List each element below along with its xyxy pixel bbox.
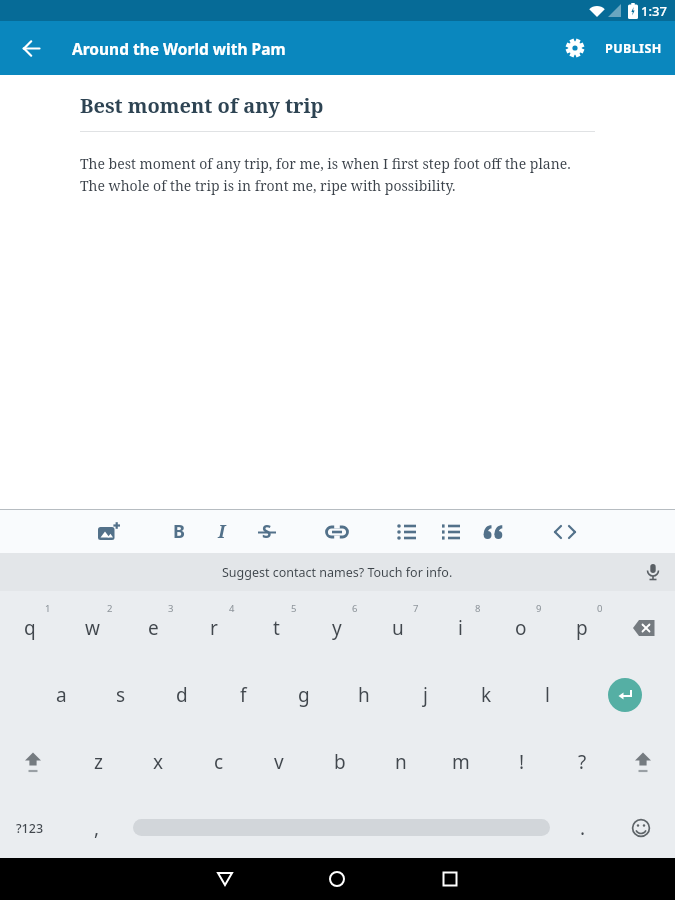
button[interactable]: i xyxy=(432,598,488,658)
button[interactable] xyxy=(88,510,128,553)
button[interactable]: b xyxy=(312,732,368,792)
staticText: ? xyxy=(578,749,587,775)
staticText: n xyxy=(395,749,407,775)
staticText: B xyxy=(173,519,185,544)
button[interactable] xyxy=(615,732,671,792)
button[interactable] xyxy=(613,798,669,858)
staticText: t xyxy=(273,615,280,641)
button[interactable]: e xyxy=(125,598,181,658)
button[interactable]: PUBLISH xyxy=(597,21,675,75)
button[interactable]: p xyxy=(554,598,610,658)
button[interactable]: ?123 xyxy=(0,798,60,858)
staticText: s xyxy=(116,682,126,708)
staticText: 7 xyxy=(413,602,419,615)
staticText: Around the World with Pam xyxy=(72,38,286,59)
button[interactable]: y xyxy=(309,598,365,658)
staticText: i xyxy=(458,615,463,641)
button[interactable] xyxy=(599,665,651,725)
staticText: 8 xyxy=(475,602,481,615)
staticText: . xyxy=(580,815,586,841)
button[interactable]: f xyxy=(215,665,271,725)
staticText: h xyxy=(358,682,370,708)
staticText: 3 xyxy=(168,602,174,615)
staticText: j xyxy=(423,682,428,708)
staticText: g xyxy=(298,682,310,708)
staticText: 4 xyxy=(229,602,235,615)
staticText: y xyxy=(332,615,342,641)
button[interactable]: t xyxy=(248,598,304,658)
button[interactable]: n xyxy=(373,732,429,792)
staticText: w xyxy=(85,615,100,641)
staticText: 2 xyxy=(107,602,113,615)
button[interactable]: d xyxy=(154,665,210,725)
button[interactable] xyxy=(553,21,597,75)
staticText: v xyxy=(274,749,284,775)
button[interactable]: ? xyxy=(554,732,610,792)
staticText: I xyxy=(218,519,226,544)
button[interactable]: q xyxy=(2,598,58,658)
staticText: a xyxy=(56,682,67,708)
button[interactable] xyxy=(313,858,361,900)
staticText: q xyxy=(24,615,36,641)
staticText: b xyxy=(334,749,346,775)
staticText: x xyxy=(153,749,164,775)
staticText: c xyxy=(214,749,224,775)
button[interactable] xyxy=(5,732,61,792)
button[interactable]: k xyxy=(458,665,514,725)
button[interactable]: h xyxy=(336,665,392,725)
button[interactable]: v xyxy=(251,732,307,792)
staticText: z xyxy=(94,749,103,775)
staticText: r xyxy=(210,615,218,641)
staticText: e xyxy=(148,615,159,641)
staticText: d xyxy=(176,682,188,708)
staticText: Best moment of any trip xyxy=(80,92,324,119)
button[interactable]: I xyxy=(202,510,242,553)
staticText: 5 xyxy=(291,602,297,615)
button[interactable]: s xyxy=(93,665,149,725)
button[interactable]: r xyxy=(186,598,242,658)
staticText: 6 xyxy=(352,602,358,615)
button[interactable] xyxy=(431,510,471,553)
button[interactable] xyxy=(317,510,357,553)
button[interactable]: S xyxy=(247,510,287,553)
button[interactable] xyxy=(545,510,585,553)
button[interactable] xyxy=(201,858,249,900)
staticText: 9 xyxy=(536,602,542,615)
button[interactable] xyxy=(426,858,474,900)
button[interactable]: w xyxy=(64,598,120,658)
staticText: 1:37 xyxy=(641,2,667,20)
staticText: k xyxy=(481,682,492,708)
button[interactable]: ! xyxy=(494,732,550,792)
button[interactable]: , xyxy=(69,798,125,858)
button[interactable] xyxy=(616,598,672,658)
staticText: p xyxy=(576,615,588,641)
button[interactable] xyxy=(475,510,515,553)
button[interactable]: a xyxy=(33,665,89,725)
button[interactable]: . xyxy=(555,798,611,858)
staticText: S xyxy=(262,520,272,543)
button[interactable]: x xyxy=(130,732,186,792)
button[interactable] xyxy=(631,553,675,591)
button[interactable]: B xyxy=(159,510,199,553)
button[interactable]: c xyxy=(191,732,247,792)
staticText: PUBLISH xyxy=(605,40,662,57)
staticText: l xyxy=(545,682,550,708)
staticText: u xyxy=(392,615,404,641)
staticText: Suggest contact names? Touch for info. xyxy=(222,564,453,581)
staticText: 1 xyxy=(45,602,51,615)
button[interactable]: u xyxy=(370,598,426,658)
button[interactable] xyxy=(0,21,62,75)
staticText: m xyxy=(452,749,470,775)
button[interactable] xyxy=(387,510,427,553)
button[interactable]: m xyxy=(433,732,489,792)
staticText: 0 xyxy=(597,602,603,615)
button[interactable]: l xyxy=(519,665,575,725)
button[interactable]: o xyxy=(493,598,549,658)
button[interactable]: g xyxy=(276,665,332,725)
button[interactable]: z xyxy=(70,732,126,792)
button[interactable]: j xyxy=(397,665,453,725)
staticText: The best moment of any trip, for me, is … xyxy=(80,154,571,195)
staticText: , xyxy=(94,815,100,841)
staticText: ! xyxy=(519,749,525,775)
